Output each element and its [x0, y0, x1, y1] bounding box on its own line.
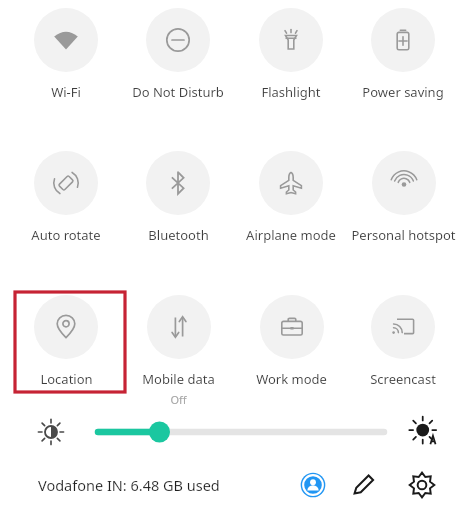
button[interactable]: User account — [299, 471, 327, 499]
staticText: Screencast — [370, 370, 436, 388]
staticText: Work mode — [256, 370, 327, 388]
button[interactable]: Edit — [349, 471, 377, 499]
button[interactable]: Personal hotspot — [349, 151, 457, 261]
button[interactable]: Auto rotate — [12, 151, 120, 261]
button[interactable]: Vodafone IN: 6.48 GB used — [38, 470, 220, 500]
staticText: Off — [170, 392, 187, 405]
button[interactable]: Brightness slider — [90, 417, 392, 447]
button[interactable]: Location — [12, 295, 120, 405]
button[interactable]: Auto brightness — [408, 416, 440, 448]
button[interactable]: Wi-Fi — [12, 8, 120, 118]
button[interactable]: Airplane mode — [237, 151, 345, 261]
staticText: Do Not Disturb — [132, 83, 224, 101]
button[interactable]: Low brightness — [36, 417, 66, 447]
staticText: Airplane mode — [246, 226, 336, 244]
button[interactable]: Mobile data — [124, 295, 232, 405]
button[interactable]: Flashlight — [237, 8, 345, 118]
staticText: Vodafone IN: 6.48 GB used — [38, 475, 220, 495]
staticText: Personal hotspot — [351, 226, 456, 244]
staticText: Location — [40, 370, 93, 388]
staticText: Auto rotate — [31, 226, 101, 244]
button[interactable]: Settings — [408, 471, 436, 499]
button[interactable]: Work mode — [237, 295, 345, 405]
button[interactable]: Screencast — [349, 295, 457, 405]
button[interactable]: Bluetooth — [124, 151, 232, 261]
staticText: Mobile data — [142, 370, 215, 388]
staticText: Flashlight — [261, 83, 321, 101]
button[interactable]: Power saving mode — [349, 8, 457, 118]
button[interactable]: Do Not Disturb — [124, 8, 232, 118]
staticText: Power saving mode — [349, 83, 457, 101]
staticText: Bluetooth — [148, 226, 209, 244]
staticText: Wi-Fi — [51, 83, 81, 101]
